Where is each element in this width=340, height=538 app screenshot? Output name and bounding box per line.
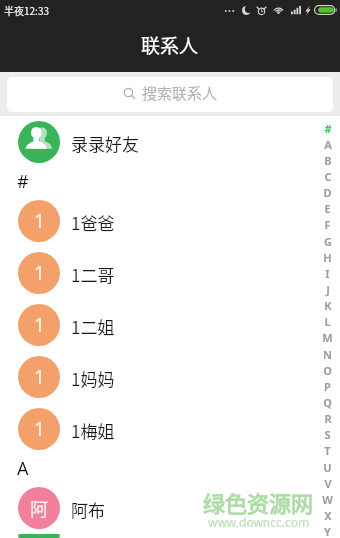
staticText: T — [324, 443, 331, 458]
staticText: 1爸爸 — [71, 210, 115, 235]
button[interactable]: 1 — [0, 195, 340, 247]
staticText: N — [323, 347, 332, 362]
staticText: I — [325, 266, 330, 281]
button[interactable]: 搜索联系人 — [7, 77, 333, 112]
staticText: G — [324, 234, 332, 249]
staticText: B — [324, 153, 332, 168]
staticText: C — [324, 169, 332, 184]
button[interactable]: S — [319, 426, 336, 442]
staticText: R — [324, 411, 332, 426]
staticText: 1妈妈 — [71, 366, 115, 391]
button[interactable]: P — [319, 378, 336, 394]
staticText: H — [323, 250, 332, 265]
staticText: K — [324, 298, 332, 313]
button[interactable]: I — [319, 265, 336, 281]
button[interactable]: T — [319, 442, 336, 458]
staticText: D — [323, 185, 332, 200]
staticText: 搜索联系人 — [142, 82, 218, 104]
staticText: # — [324, 121, 332, 136]
staticText: M — [322, 330, 333, 345]
button[interactable]: 1 — [0, 299, 340, 351]
staticText: 1梅姐 — [71, 418, 115, 443]
staticText: 1 — [34, 312, 45, 338]
staticText: U — [323, 460, 332, 475]
button[interactable]: B — [319, 152, 336, 168]
staticText: W — [322, 492, 333, 507]
button[interactable]: R — [319, 410, 336, 426]
button[interactable]: W — [319, 491, 336, 507]
button[interactable]: C — [319, 168, 336, 184]
button[interactable]: E — [319, 200, 336, 216]
staticText: 1 — [34, 208, 45, 234]
button[interactable]: Y — [319, 523, 336, 538]
staticText: www.downcc.com — [208, 514, 310, 530]
staticText: P — [324, 379, 331, 394]
button[interactable]: O — [319, 362, 336, 378]
staticText: E — [324, 201, 331, 216]
button[interactable]: 录录好友 — [0, 116, 340, 168]
button[interactable]: D — [319, 184, 336, 200]
button[interactable]: 阿 — [0, 534, 340, 538]
staticText: 1二姐 — [71, 314, 115, 339]
staticText: X — [324, 508, 332, 523]
staticText: O — [323, 363, 332, 378]
staticText: V — [324, 476, 332, 491]
staticText: 半夜12:33 — [4, 3, 49, 17]
staticText: # — [17, 169, 29, 194]
staticText: 1 — [34, 416, 45, 442]
button[interactable]: 1 — [0, 351, 340, 403]
button[interactable]: 1 — [0, 247, 340, 299]
button[interactable]: U — [319, 459, 336, 475]
staticText: 1 — [34, 260, 45, 286]
staticText: 1 — [34, 364, 45, 390]
button[interactable]: A — [319, 136, 336, 152]
button[interactable]: L — [319, 313, 336, 329]
staticText: Q — [323, 395, 332, 410]
staticText: A — [17, 456, 29, 481]
button[interactable]: # — [319, 120, 336, 136]
staticText: 阿布 — [71, 497, 105, 522]
staticText: A — [324, 137, 332, 152]
staticText: 录录好友 — [71, 131, 139, 156]
button[interactable]: H — [319, 249, 336, 265]
staticText: 绿色资源网 — [203, 486, 314, 518]
staticText: S — [324, 427, 331, 442]
button[interactable]: X — [319, 507, 336, 523]
button[interactable]: V — [319, 475, 336, 491]
button[interactable]: 1 — [0, 403, 340, 455]
button[interactable]: J — [319, 281, 336, 297]
staticText: 阿 — [30, 495, 48, 521]
button[interactable]: N — [319, 346, 336, 362]
staticText: L — [324, 314, 331, 329]
button[interactable]: 阿 — [0, 482, 340, 534]
button[interactable]: G — [319, 233, 336, 249]
button[interactable]: F — [319, 216, 336, 232]
staticText: J — [326, 282, 330, 297]
button[interactable]: K — [319, 297, 336, 313]
staticText: 联系人 — [141, 31, 199, 59]
button[interactable]: Q — [319, 394, 336, 410]
staticText: Y — [324, 524, 331, 538]
staticText: F — [324, 217, 331, 232]
button[interactable]: M — [319, 329, 336, 345]
staticText: 1二哥 — [71, 262, 115, 287]
